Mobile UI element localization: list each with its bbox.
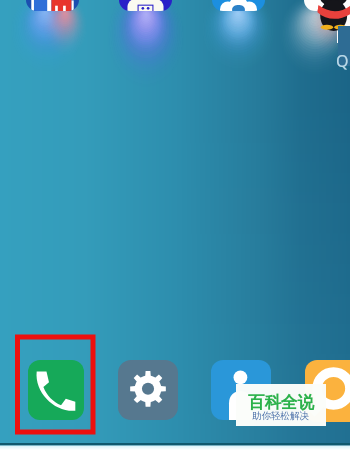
staticText: Q [336, 50, 349, 72]
button[interactable]: Phone [28, 360, 84, 420]
staticText: 助你轻松解决 [252, 410, 309, 422]
button[interactable]: App [119, 0, 172, 11]
button[interactable]: QQ [304, 0, 350, 11]
staticText: 百科全说 [248, 392, 314, 413]
button[interactable]: Search [305, 360, 350, 422]
button[interactable]: App [26, 0, 79, 11]
button[interactable]: App [212, 0, 265, 11]
button[interactable]: Settings [118, 360, 178, 420]
button[interactable]: Contacts [211, 360, 271, 420]
